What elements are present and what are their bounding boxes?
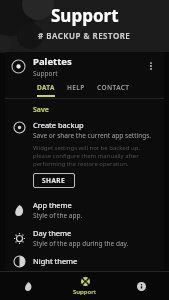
button[interactable]: DATA (31, 80, 61, 98)
staticText: Support (33, 69, 58, 78)
staticText: Support (73, 288, 97, 296)
button[interactable]: CONTACT (91, 80, 136, 98)
button[interactable]: Info (113, 272, 169, 300)
staticText: Day theme (33, 228, 72, 238)
button[interactable]: More options (143, 58, 159, 74)
button[interactable]: Create backup (5, 117, 164, 194)
staticText: Palettes (33, 55, 72, 68)
button[interactable]: Support (57, 272, 113, 300)
staticText: Widget settings will not be backed up, p… (33, 144, 156, 168)
button[interactable]: Day theme (5, 224, 164, 252)
button[interactable]: Night theme (5, 252, 164, 271)
staticText: Save or share the current app settings. (33, 131, 152, 140)
staticText: CONTACT (97, 83, 130, 92)
staticText: SHARE (42, 176, 66, 185)
button[interactable]: Palettes (5, 52, 164, 80)
staticText: Night theme (33, 256, 78, 266)
button[interactable]: Widgets (0, 272, 57, 300)
staticText: DATA (37, 83, 55, 92)
staticText: Create backup (33, 120, 84, 130)
button[interactable]: HELP (61, 80, 91, 98)
staticText: App theme (33, 200, 72, 210)
staticText: HELP (67, 83, 85, 92)
staticText: Support (51, 4, 119, 27)
button[interactable]: SHARE (33, 173, 75, 188)
staticText: # BACKUP & RESTORE (38, 30, 131, 41)
staticText: Save (33, 105, 49, 115)
staticText: Style of the app. (33, 211, 83, 220)
staticText: Style of the app during the day. (33, 239, 129, 248)
button[interactable]: App theme (5, 196, 164, 224)
